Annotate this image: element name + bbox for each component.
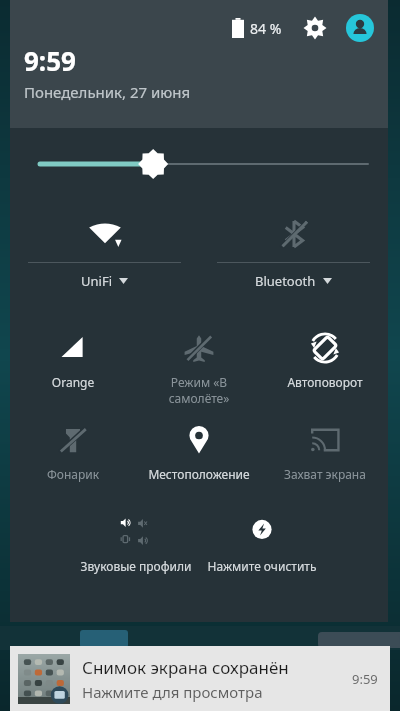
button[interactable]: Orange xyxy=(14,326,132,390)
staticText: UniFi xyxy=(81,272,112,290)
staticText: Автоповорот xyxy=(266,374,384,390)
staticText: Нажмите для просмотра xyxy=(82,682,263,702)
staticText: Нажмите очистить xyxy=(203,558,321,574)
button[interactable]: Brightness xyxy=(22,142,376,186)
staticText: Захват экрана xyxy=(266,466,384,482)
button[interactable]: Снимок экрана сохранён xyxy=(10,646,390,711)
staticText: Режим «В самолёте» xyxy=(140,374,258,404)
button[interactable]: UniFi xyxy=(28,208,181,290)
button[interactable]: Settings xyxy=(302,15,328,41)
button[interactable]: User profile xyxy=(346,14,374,42)
staticText: 9:59 xyxy=(24,43,76,78)
staticText: Orange xyxy=(14,374,132,390)
button[interactable]: Захват экрана xyxy=(266,418,384,482)
staticText: Понедельник, 27 июня xyxy=(24,82,191,102)
button[interactable]: Bluetooth xyxy=(217,208,370,290)
button[interactable]: Нажмите очистить xyxy=(203,510,321,574)
staticText: 9:59 xyxy=(352,670,378,688)
button[interactable]: Звуковые профили xyxy=(77,510,195,574)
staticText: Фонарик xyxy=(14,466,132,482)
staticText: Звуковые профили xyxy=(77,558,195,574)
staticText: Снимок экрана сохранён xyxy=(82,656,289,679)
button[interactable]: Автоповорот xyxy=(266,326,384,390)
staticText: Bluetooth xyxy=(255,272,316,290)
staticText: Местоположение xyxy=(140,466,258,482)
staticText: 84 % xyxy=(250,19,282,38)
button[interactable]: Фонарик xyxy=(14,418,132,482)
button[interactable]: Режим «В самолёте» xyxy=(140,326,258,404)
button[interactable]: Местоположение xyxy=(140,418,258,482)
other: Battery xyxy=(232,18,244,38)
